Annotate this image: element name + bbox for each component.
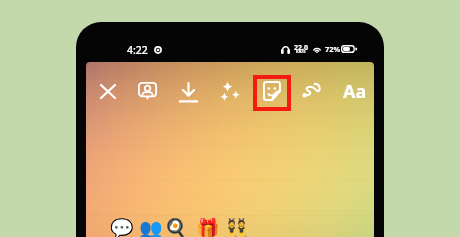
button[interactable]: Text — [338, 75, 370, 107]
button[interactable]: Download — [172, 76, 204, 108]
staticText: 4:22 — [127, 43, 148, 57]
staticText: Aa — [343, 79, 367, 104]
button[interactable]: Draw — [296, 74, 328, 106]
staticText: 72% — [325, 44, 341, 54]
staticText: 🎁 — [196, 217, 220, 237]
button[interactable]: Effects — [214, 75, 246, 107]
staticText: KB/S — [296, 49, 306, 55]
button[interactable]: Share to story — [132, 75, 164, 107]
staticText: 22.0 — [294, 43, 308, 53]
staticText: 👯 — [225, 217, 249, 237]
staticText: 🍳 — [164, 217, 188, 237]
button[interactable]: Close — [92, 75, 124, 107]
staticText: 👥 — [139, 217, 163, 237]
button[interactable]: Stickers — [253, 75, 291, 111]
button[interactable]: Sticker — [256, 75, 288, 107]
staticText: 💬 — [110, 217, 134, 237]
